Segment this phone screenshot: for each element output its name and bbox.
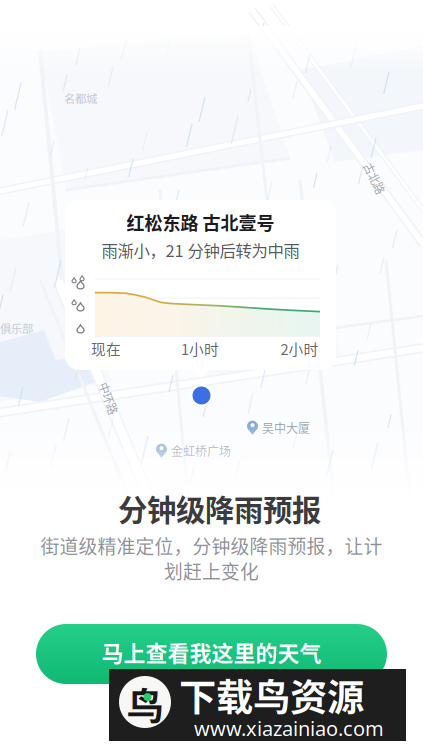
staticText: 现在: [91, 338, 121, 359]
staticText: 2小时: [280, 338, 318, 359]
staticText: 街道级精准定位，分钟级降雨预报，让计: [40, 532, 382, 559]
staticText: 马上查看我这里的天气: [101, 636, 321, 668]
staticText: 鸟: [126, 677, 163, 731]
staticText: 金虹桥广场: [171, 442, 231, 459]
staticText: 古北路: [358, 170, 391, 186]
staticText: 中环路: [92, 390, 125, 406]
staticText: 划赶上变化: [164, 557, 259, 584]
staticText: www.xiazainiao.com: [194, 715, 384, 742]
staticText: 雨渐小，21 分钟后转为中雨: [101, 238, 299, 262]
staticText: 分钟级降雨预报: [118, 487, 321, 529]
button[interactable]: 马上查看我这里的天气: [36, 624, 387, 684]
staticText: 1小时: [181, 338, 219, 359]
staticText: 名都城: [64, 90, 97, 106]
staticText: 吴中大厦: [262, 419, 310, 436]
staticText: 下载鸟资源: [179, 668, 364, 722]
staticText: 红松东路 古北壹号: [126, 209, 274, 235]
staticText: 俱乐部: [0, 320, 33, 336]
